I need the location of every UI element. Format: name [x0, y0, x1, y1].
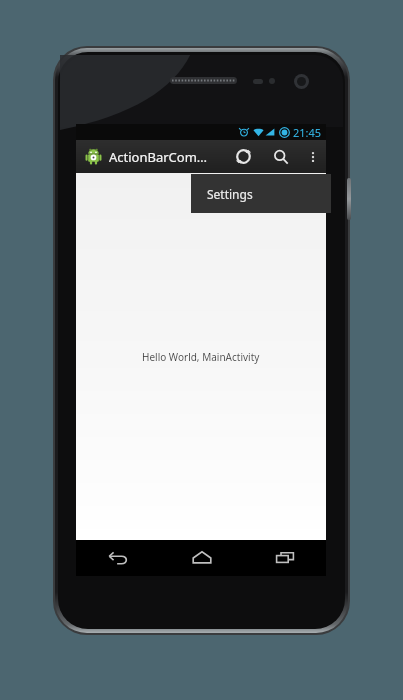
staticText: Hello World, MainActivity: [142, 350, 260, 364]
button[interactable]: Refresh: [224, 140, 262, 173]
button[interactable]: Recent apps: [243, 540, 326, 576]
staticText: ActionBarCom…: [109, 148, 224, 166]
button[interactable]: Back: [76, 540, 160, 576]
staticText: Settings: [207, 186, 253, 202]
staticText: 21:45: [293, 125, 322, 140]
button[interactable]: Settings: [191, 174, 331, 213]
button[interactable]: Home: [160, 540, 243, 576]
button[interactable]: Search: [262, 140, 300, 173]
button[interactable]: More options: [300, 140, 326, 173]
